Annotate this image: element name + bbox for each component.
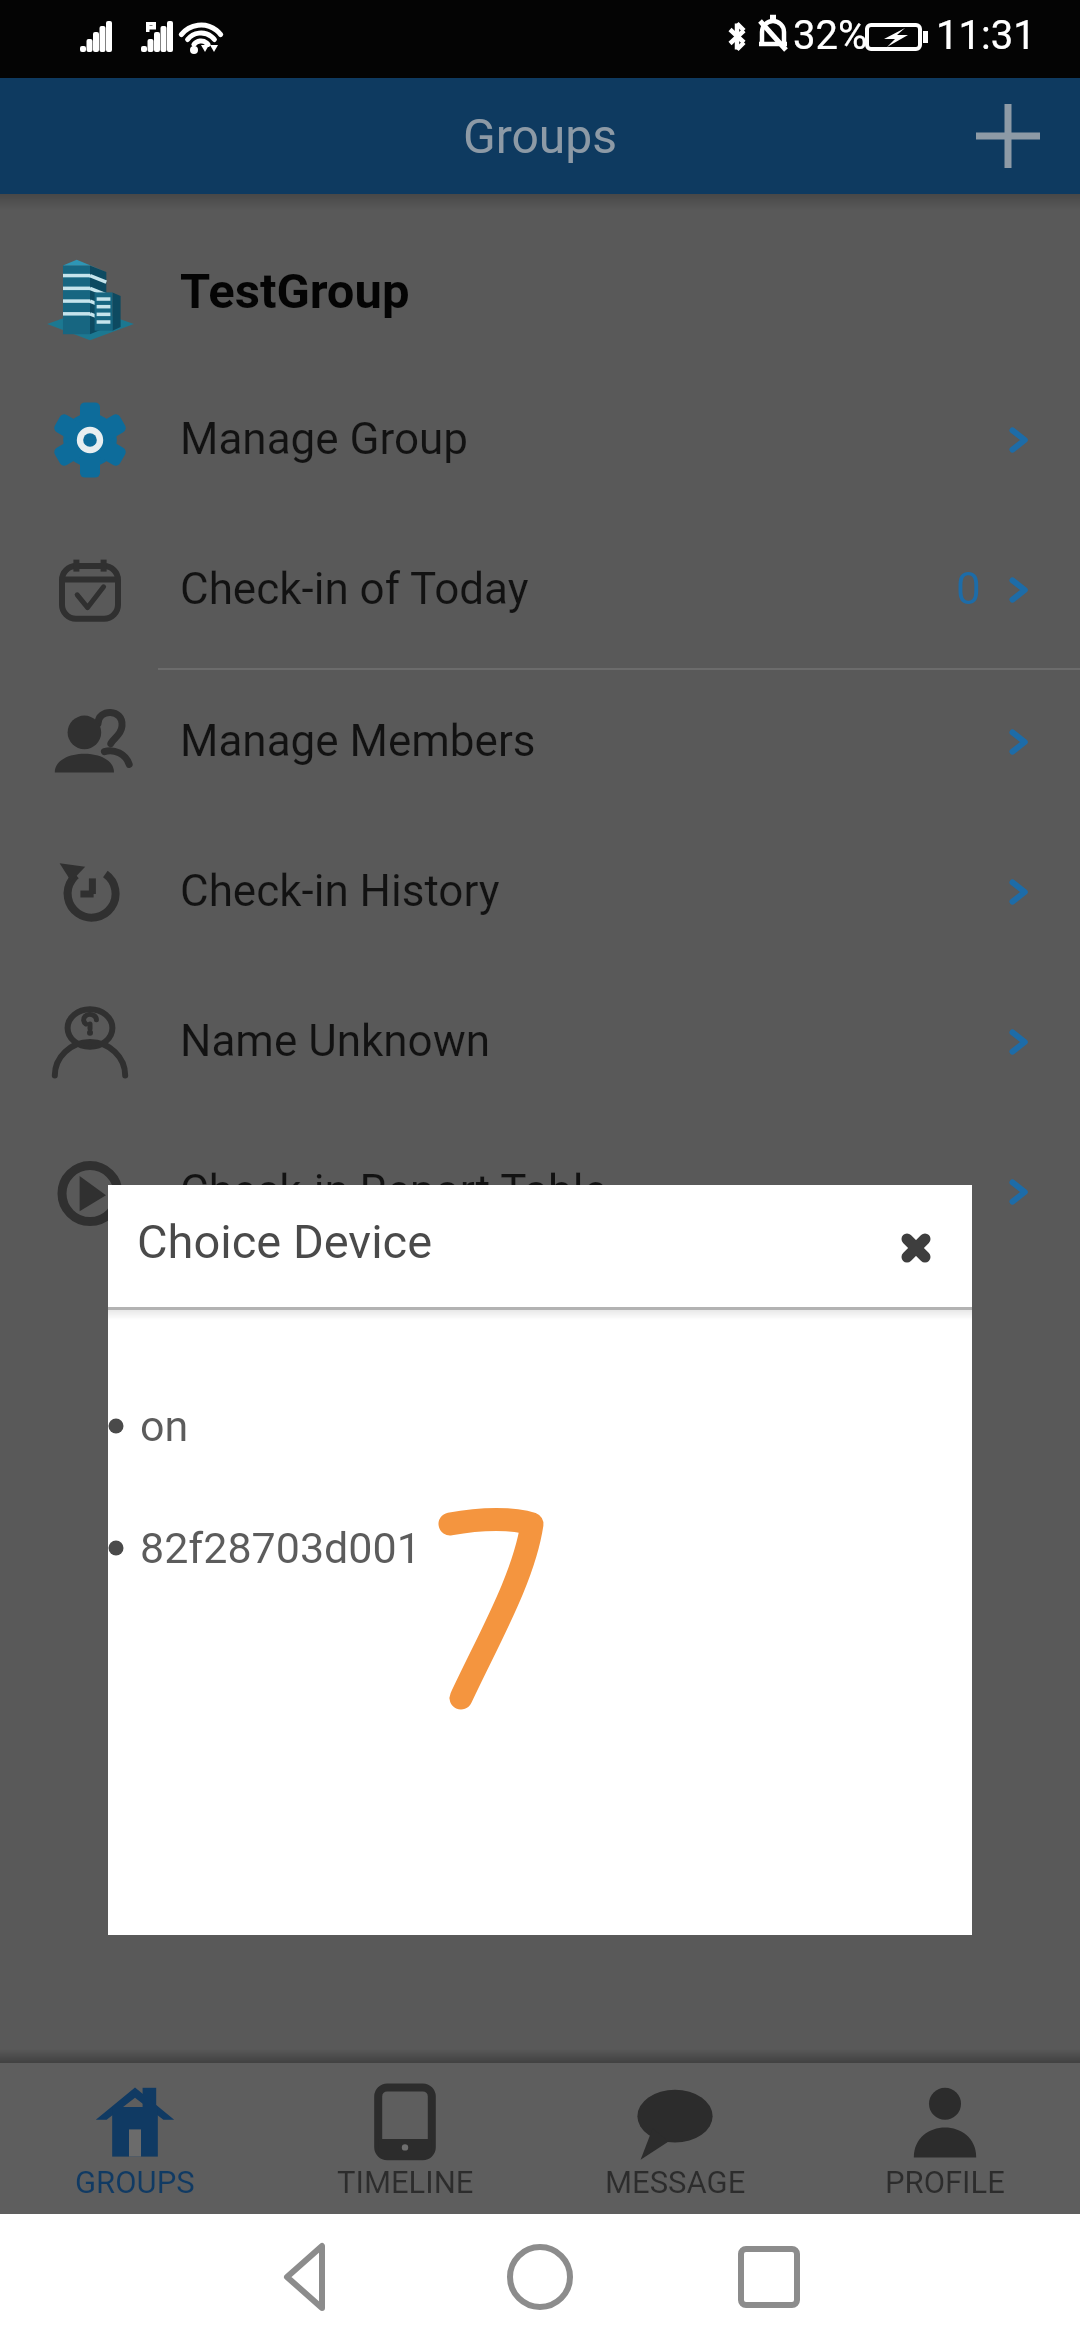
button[interactable]: MESSAGE xyxy=(540,2063,810,2214)
button[interactable]: Check-in Report Table xyxy=(0,1120,1080,1270)
button[interactable]: 82f28703d001 xyxy=(108,1518,972,1578)
staticText: PROFILE xyxy=(885,2164,1005,2200)
staticText: MESSAGE xyxy=(605,2164,746,2200)
staticText: Groups xyxy=(463,108,618,164)
button[interactable]: Check-in of Today xyxy=(0,518,1080,668)
staticText: Manage Members xyxy=(180,715,536,767)
button[interactable]: Check-in History xyxy=(0,820,1080,970)
staticText: TestGroup xyxy=(180,263,410,320)
button[interactable]: PROFILE xyxy=(810,2063,1080,2214)
button[interactable]: on xyxy=(108,1396,972,1456)
button[interactable]: Add group xyxy=(954,82,1062,190)
staticText: 11:31 xyxy=(936,12,1036,59)
staticText: Check-in History xyxy=(180,865,500,917)
staticText: 82f28703d001 xyxy=(140,1523,421,1573)
button[interactable]: Manage Members xyxy=(0,670,1080,820)
staticText: Manage Group xyxy=(180,413,469,465)
staticText: TIMELINE xyxy=(337,2164,474,2200)
button[interactable]: Manage Group xyxy=(0,368,1080,518)
button[interactable]: TestGroup xyxy=(0,218,1080,368)
button[interactable]: TIMELINE xyxy=(270,2063,540,2214)
button[interactable]: Close dialog xyxy=(877,1209,955,1287)
staticText: Name Unknown xyxy=(180,1015,491,1067)
staticText: Choice Device xyxy=(137,1214,433,1269)
staticText: 32% xyxy=(793,12,868,59)
button[interactable]: GROUPS xyxy=(0,2063,270,2214)
staticText: 0 xyxy=(956,563,981,615)
staticText: GROUPS xyxy=(75,2164,195,2200)
staticText: on xyxy=(140,1401,189,1451)
staticText: Check-in Report Table xyxy=(180,1165,607,1217)
staticText: Check-in of Today xyxy=(180,563,529,615)
button[interactable]: Name Unknown xyxy=(0,970,1080,1120)
